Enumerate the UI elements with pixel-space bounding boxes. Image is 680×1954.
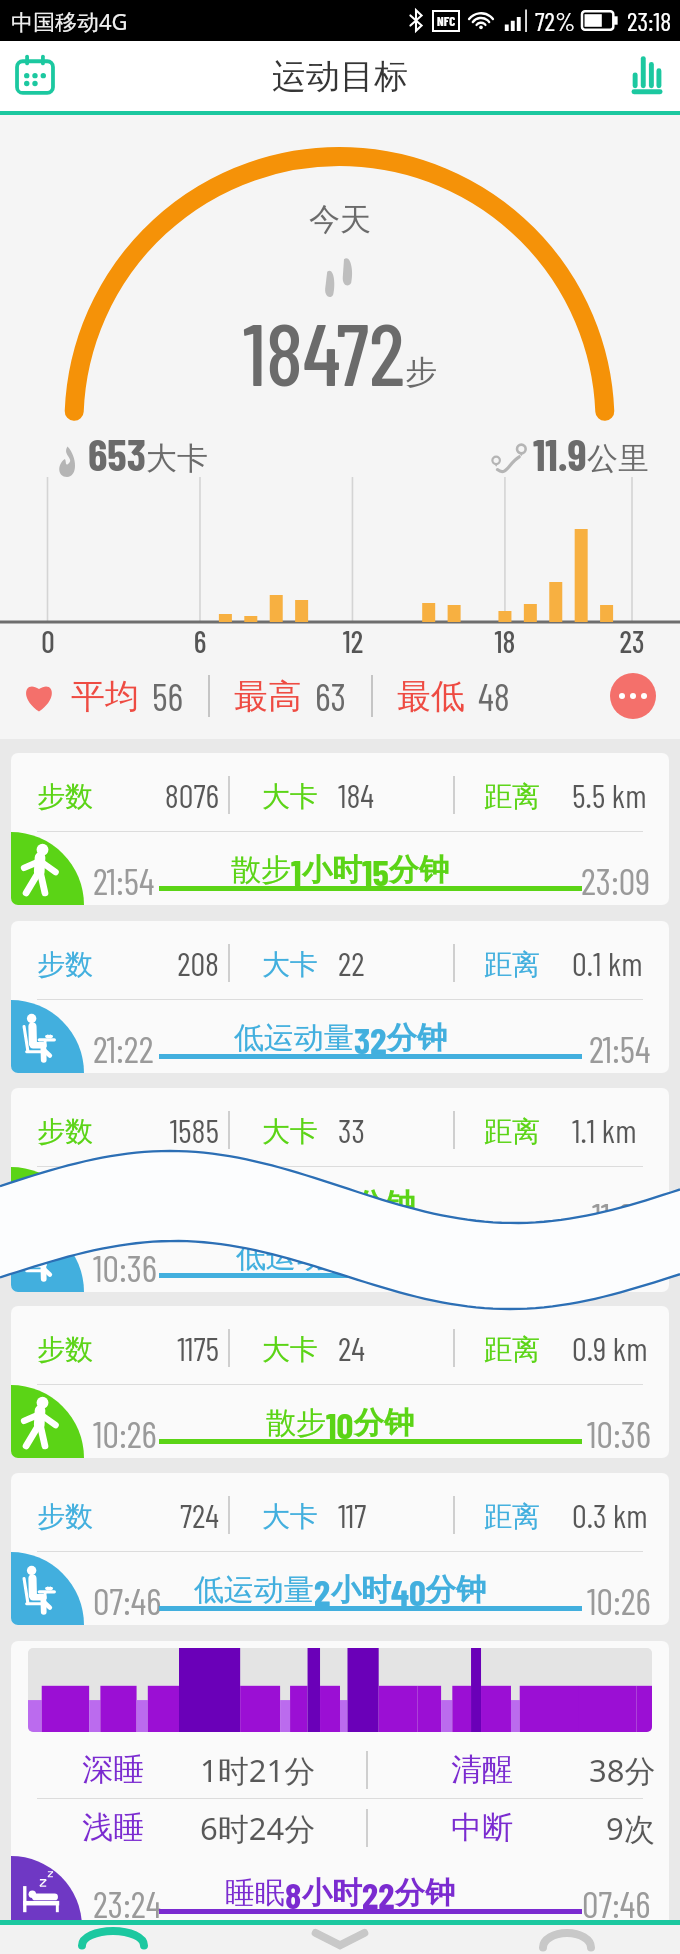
staticText: 6时24分	[200, 1807, 316, 1849]
staticText: 0.1 km	[572, 943, 643, 983]
staticText: 23:18	[627, 5, 672, 36]
staticText: 0	[23, 623, 73, 659]
staticText: 距离	[484, 947, 540, 982]
staticText: 大卡	[262, 779, 318, 814]
staticText: 48	[478, 673, 510, 719]
staticText: 运动目标	[272, 55, 408, 98]
staticText: 07:46	[93, 1578, 162, 1622]
staticText: 33	[338, 1110, 365, 1150]
staticText: 22	[362, 1872, 395, 1916]
staticText: 184	[338, 775, 375, 815]
staticText: 12	[328, 623, 378, 659]
staticText: NFC	[437, 13, 456, 29]
staticText: 1	[291, 849, 302, 893]
staticText: 117	[338, 1495, 367, 1535]
staticText: 睡眠	[225, 1874, 285, 1912]
button[interactable]: Statistics	[616, 47, 674, 105]
staticText: 1175	[121, 1328, 219, 1368]
staticText: 中国移动4G	[11, 6, 128, 36]
staticText: 分钟	[387, 1019, 447, 1057]
button[interactable]: 步数	[11, 1306, 669, 1458]
staticText: 公里	[587, 439, 649, 478]
staticText: 21:54	[93, 858, 155, 902]
staticText: 10:26	[93, 1411, 157, 1455]
staticText: 23:09	[581, 858, 651, 902]
staticText: 2	[314, 1569, 331, 1613]
staticText: 步	[405, 352, 437, 392]
staticText: 最低	[397, 675, 465, 718]
button[interactable]: Back	[226, 1925, 453, 1954]
staticText: 10	[326, 1402, 354, 1446]
staticText: 1时21分	[200, 1749, 316, 1791]
staticText: 大卡	[262, 1114, 318, 1149]
staticText: 14	[326, 1184, 355, 1228]
staticText: 散步	[231, 851, 291, 889]
staticText: 21:54	[589, 1026, 651, 1070]
staticText: 653	[88, 427, 146, 480]
staticText: 11.9	[533, 427, 587, 480]
button[interactable]: Calendar	[6, 47, 64, 105]
staticText: 距离	[484, 1114, 540, 1149]
staticText: 10:36	[93, 1245, 157, 1289]
staticText: 56	[152, 673, 184, 719]
staticText: 15	[362, 849, 389, 893]
button[interactable]: 步数	[11, 1088, 669, 1240]
staticText: 步数	[37, 1114, 93, 1149]
staticText: 步数	[37, 1499, 93, 1534]
staticText: 72%	[535, 5, 576, 36]
button[interactable]: More options	[610, 673, 656, 719]
staticText: 8	[285, 1872, 302, 1916]
staticText: 分钟	[355, 1186, 415, 1224]
staticText: 步数	[37, 947, 93, 982]
staticText: 距离	[484, 779, 540, 814]
staticText: 步数	[37, 1332, 93, 1367]
staticText: 浅睡	[82, 1808, 144, 1847]
staticText: 14	[356, 1236, 385, 1280]
staticText: 距离	[484, 1499, 540, 1534]
staticText: 最高	[234, 675, 302, 718]
staticText: 1.1 km	[572, 1110, 637, 1150]
staticText: 40	[391, 1569, 426, 1613]
button[interactable]: 步数	[11, 921, 669, 1073]
staticText: 清醒	[451, 1750, 513, 1789]
staticText: 9次	[606, 1807, 655, 1849]
staticText: 分钟	[426, 1571, 486, 1609]
button[interactable]: 深睡	[11, 1641, 669, 1927]
staticText: 5.5 km	[572, 775, 647, 815]
staticText: 低运动量	[194, 1571, 314, 1609]
staticText: 低运动量	[234, 1019, 354, 1057]
staticText: 分钟	[389, 851, 449, 889]
button[interactable]: 步数	[11, 753, 669, 905]
staticText: 10:36	[587, 1411, 651, 1455]
staticText: 10:26	[587, 1578, 651, 1622]
staticText: 低运动量	[236, 1238, 356, 1276]
staticText: 38分	[589, 1749, 656, 1791]
staticText: 18	[480, 623, 530, 659]
button[interactable]: Home	[453, 1925, 680, 1954]
staticText: 0.9 km	[572, 1328, 648, 1368]
staticText: 18472	[243, 300, 405, 403]
staticText: 23	[607, 623, 657, 659]
staticText: 小时	[331, 1571, 391, 1609]
staticText: 24	[338, 1328, 365, 1368]
staticText: 208	[121, 943, 219, 983]
staticText: 小时	[302, 851, 362, 889]
staticText: 724	[121, 1495, 219, 1535]
staticText: 0.3 km	[572, 1495, 648, 1535]
button[interactable]: 10:36	[11, 1219, 669, 1292]
button[interactable]: 步数	[11, 1473, 669, 1625]
staticText: 小时	[302, 1874, 362, 1912]
staticText: 深睡	[82, 1750, 144, 1789]
staticText: 平均	[71, 675, 139, 718]
staticText: 大卡	[262, 1499, 318, 1534]
staticText: 11:00	[592, 1193, 651, 1237]
staticText: 分钟	[395, 1874, 455, 1912]
staticText: 21:22	[93, 1026, 154, 1070]
staticText: 中断	[451, 1808, 513, 1847]
staticText: 32	[354, 1017, 387, 1061]
button[interactable]: Recent apps	[0, 1925, 226, 1954]
staticText: 63	[315, 673, 347, 719]
